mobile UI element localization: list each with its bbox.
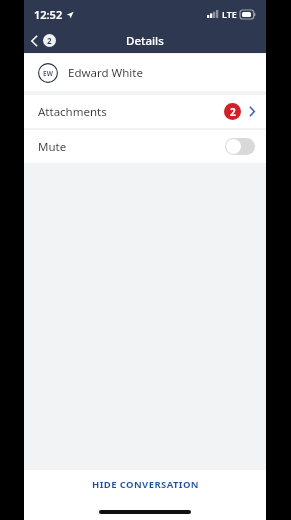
button[interactable]: EW xyxy=(24,54,266,91)
staticText: Edward White xyxy=(68,65,143,81)
staticText: 2 xyxy=(47,35,52,46)
staticText: Attachments xyxy=(38,104,224,120)
staticText: LTE xyxy=(222,8,237,20)
staticText: 12:52 xyxy=(34,7,63,22)
button[interactable]: Mute toggle, off xyxy=(225,138,255,155)
button[interactable]: Back, 2 unread xyxy=(24,31,62,50)
button[interactable]: HIDE CONVERSATION xyxy=(24,470,266,498)
staticText: Mute xyxy=(38,139,225,155)
staticText: HIDE CONVERSATION xyxy=(92,478,199,491)
button[interactable]: Mute xyxy=(24,130,266,163)
staticText: Details xyxy=(126,33,164,49)
button[interactable]: Attachments xyxy=(24,95,266,128)
staticText: 2 xyxy=(230,105,236,119)
staticText: EW xyxy=(43,69,53,78)
